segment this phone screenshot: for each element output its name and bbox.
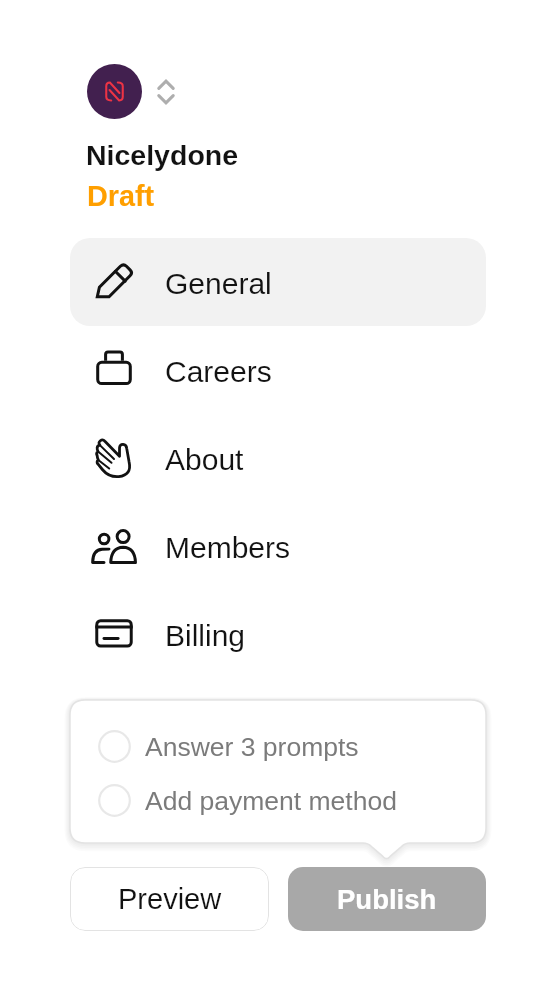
button[interactable]: Switch workspace xyxy=(150,73,182,105)
button[interactable]: General xyxy=(70,238,486,326)
staticText: Nicelydone xyxy=(86,139,239,171)
staticText: Billing xyxy=(165,619,246,653)
button[interactable]: Preview xyxy=(70,867,269,931)
button[interactable]: Billing xyxy=(70,590,486,678)
staticText: Careers xyxy=(165,355,272,389)
button[interactable]: Careers xyxy=(70,326,486,414)
staticText: About xyxy=(165,443,244,477)
staticText: Preview xyxy=(118,883,222,915)
button[interactable]: Answer 3 prompts xyxy=(98,730,359,763)
staticText: General xyxy=(165,267,272,301)
button[interactable]: About xyxy=(70,414,486,502)
button[interactable]: Publish xyxy=(288,867,486,931)
staticText: Add payment method xyxy=(145,786,397,816)
staticText: Answer 3 prompts xyxy=(145,732,359,762)
staticText: Members xyxy=(165,531,291,565)
button[interactable]: Add payment method xyxy=(98,784,397,817)
button[interactable]: Members xyxy=(70,502,486,590)
staticText: Publish xyxy=(337,884,437,915)
button[interactable] xyxy=(87,64,142,119)
staticText: Draft xyxy=(87,180,155,212)
